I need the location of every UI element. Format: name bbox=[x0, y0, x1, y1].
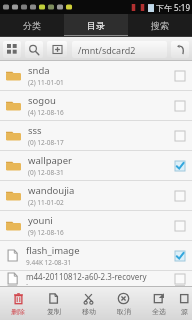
staticText: 删除 bbox=[11, 307, 25, 316]
staticText: 复制 bbox=[47, 307, 61, 316]
staticText: 下午 5:19 bbox=[156, 2, 190, 13]
staticText: snda bbox=[28, 64, 50, 77]
staticText: flash_image bbox=[26, 244, 80, 257]
staticText: 分类 bbox=[23, 20, 41, 31]
staticText: 目录 bbox=[87, 20, 105, 31]
button[interactable]: Selected bbox=[174, 160, 186, 172]
staticText: sogou bbox=[28, 94, 56, 107]
staticText: (2) 11-01-01 bbox=[28, 78, 64, 87]
button[interactable]: 全选 bbox=[141, 288, 176, 320]
button[interactable]: 删除 bbox=[0, 288, 36, 320]
button[interactable]: wandoujia bbox=[0, 181, 192, 210]
button[interactable]: 分类 bbox=[0, 14, 64, 36]
button[interactable]: New folder bbox=[47, 41, 67, 57]
button[interactable]: /mnt/sdcard2 bbox=[72, 41, 167, 58]
button[interactable]: 搜索 bbox=[128, 14, 192, 36]
button[interactable]: Selected bbox=[174, 250, 186, 262]
button[interactable]: 移动 bbox=[71, 288, 106, 320]
staticText: (2) 11-01-02 bbox=[28, 198, 64, 207]
staticText: sss bbox=[28, 124, 42, 137]
button[interactable]: wallpaper bbox=[0, 151, 192, 180]
staticText: wandoujia bbox=[28, 184, 75, 197]
staticText: (0) 12-08-31 bbox=[28, 168, 64, 177]
staticText: wallpaper bbox=[28, 154, 72, 167]
staticText: 搜索 bbox=[151, 20, 169, 31]
button[interactable]: Search bbox=[25, 41, 43, 58]
button[interactable]: Not selected bbox=[174, 70, 186, 82]
button[interactable]: Up one level bbox=[171, 41, 189, 58]
button[interactable]: Not selected bbox=[174, 220, 186, 232]
staticText: 9.44K 12-08-31 bbox=[26, 258, 72, 267]
button[interactable]: Not selected bbox=[174, 190, 186, 202]
staticText: (0) 12-08-17 bbox=[28, 138, 64, 147]
staticText: 移动 bbox=[82, 307, 96, 316]
staticText: 取消 bbox=[117, 307, 131, 316]
staticText: 源 bbox=[181, 307, 188, 316]
button[interactable]: m44-20110812-a60-2.3-recovery bbox=[0, 271, 192, 286]
staticText: img bbox=[26, 282, 41, 286]
button[interactable]: youni bbox=[0, 211, 192, 240]
staticText: youni bbox=[28, 214, 53, 227]
button[interactable]: snda bbox=[0, 61, 192, 90]
button[interactable]: Not selected bbox=[174, 100, 186, 112]
button[interactable]: sss bbox=[0, 121, 192, 150]
button[interactable]: Grid view bbox=[3, 41, 21, 58]
button[interactable]: sogou bbox=[0, 91, 192, 120]
staticText: 全选 bbox=[152, 307, 166, 316]
button[interactable]: Not selected bbox=[174, 273, 186, 285]
staticText: (4) 12-08-16 bbox=[28, 108, 64, 117]
button[interactable]: 目录 bbox=[64, 14, 128, 36]
button[interactable]: 源 bbox=[176, 288, 192, 320]
staticText: (9) 12-08-16 bbox=[28, 228, 64, 237]
button[interactable]: flash_image bbox=[0, 241, 192, 270]
button[interactable]: Not selected bbox=[174, 130, 186, 142]
staticText: m44-20110812-a60-2.3-recovery bbox=[26, 271, 147, 282]
button[interactable]: 复制 bbox=[36, 288, 71, 320]
staticText: /mnt/sdcard2 bbox=[78, 44, 136, 56]
button[interactable]: 取消 bbox=[106, 288, 141, 320]
